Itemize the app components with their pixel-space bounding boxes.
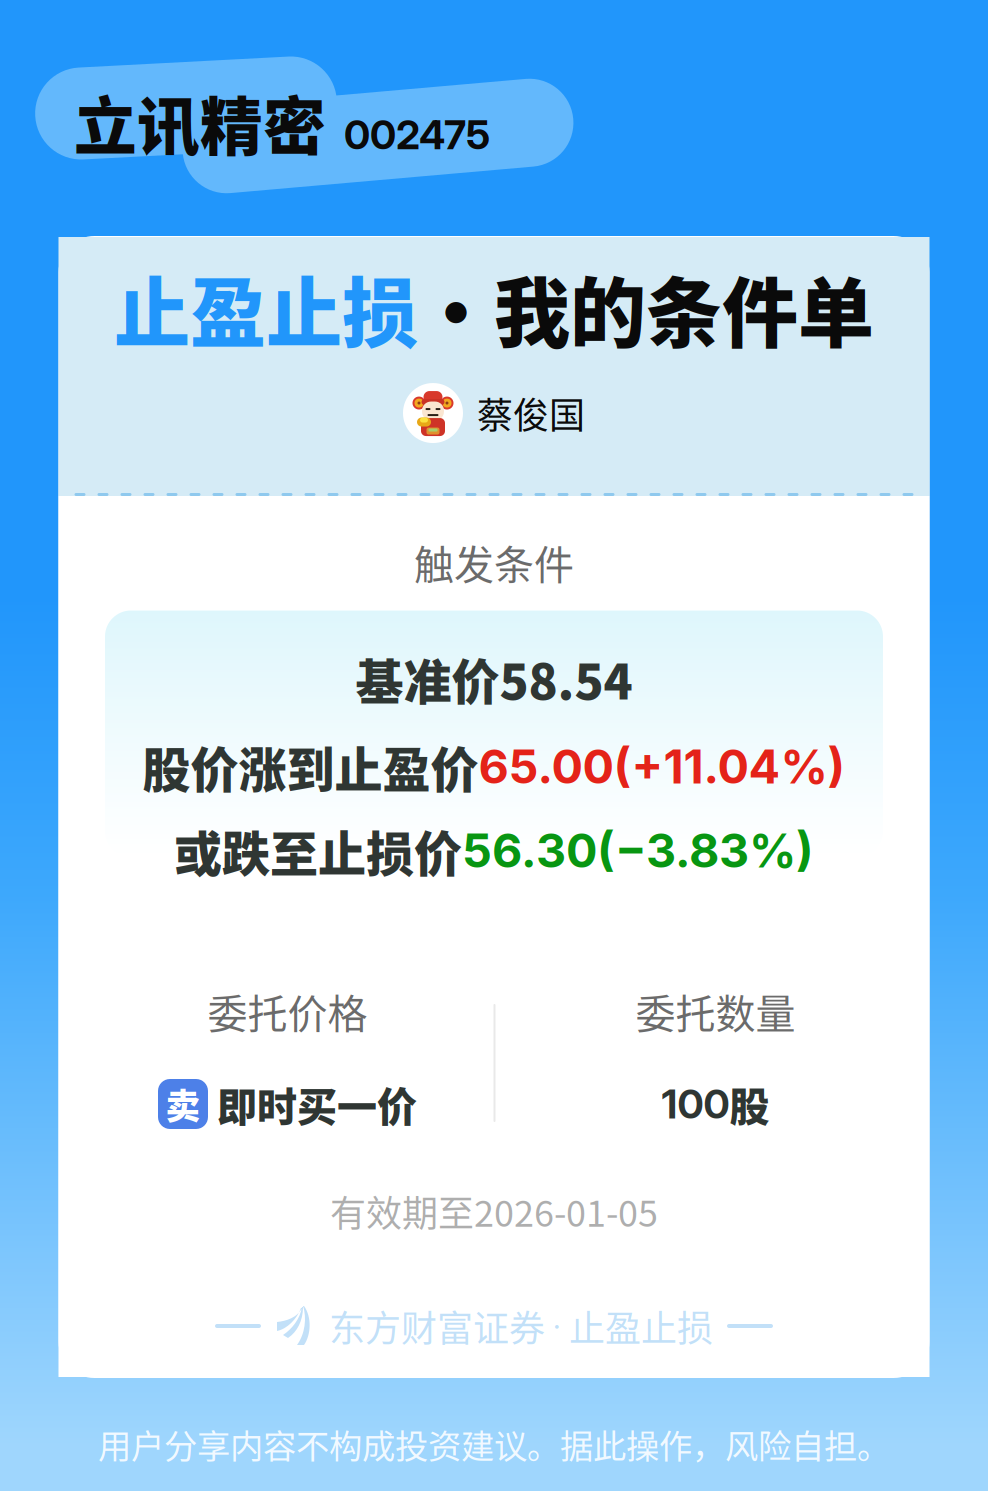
- staticText: 基准价58.54: [355, 644, 632, 713]
- staticText: 立讯精密: [74, 77, 326, 167]
- staticText: 或跌至止损价: [174, 816, 462, 885]
- staticText: 股价涨到止盈价: [142, 732, 478, 801]
- staticText: 蔡俊国: [477, 387, 585, 439]
- staticText: 65.00(+11.04%): [478, 738, 845, 795]
- staticText: 56.30(−3.83%): [462, 822, 814, 879]
- staticText: 东方财富证券: [329, 1300, 545, 1352]
- staticText: ·: [545, 1308, 569, 1344]
- staticText: 卖: [165, 1079, 200, 1129]
- staticText: 用户分享内容不构成投资建议。据此操作，风险自担。: [98, 1420, 890, 1468]
- staticText: 002475: [344, 111, 490, 159]
- staticText: 止盈止损: [569, 1300, 713, 1352]
- staticText: 止盈止损: [114, 253, 418, 363]
- staticText: 有效期至2026-01-05: [330, 1185, 658, 1237]
- staticText: 即时买一价: [217, 1075, 417, 1133]
- staticText: 委托价格: [207, 982, 367, 1040]
- staticText: 100: [661, 1080, 729, 1128]
- staticText: 触发条件: [414, 533, 574, 591]
- staticText: 委托数量: [635, 982, 795, 1040]
- staticText: ·我的条件单: [418, 253, 874, 363]
- staticText: 股: [729, 1075, 769, 1133]
